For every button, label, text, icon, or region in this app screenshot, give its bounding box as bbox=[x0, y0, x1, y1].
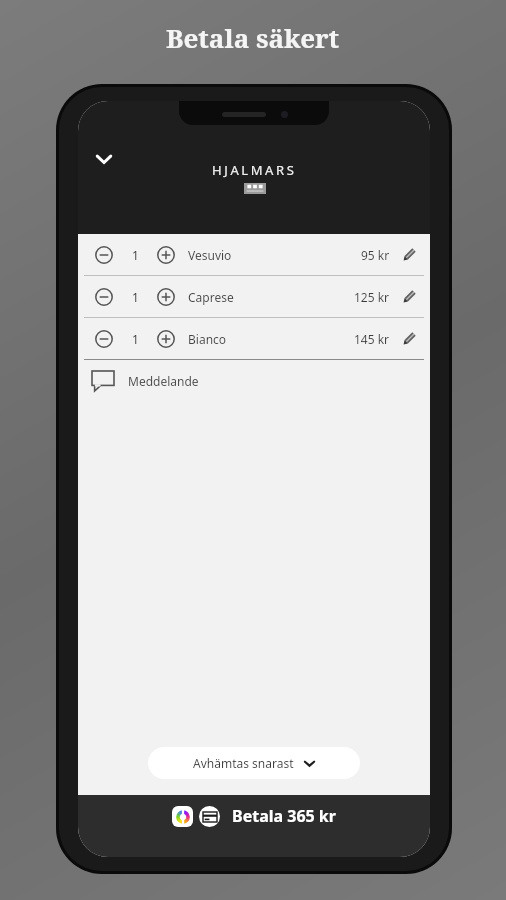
button[interactable]: Increase Bianco bbox=[152, 325, 180, 353]
staticText: Avhämtas snarast bbox=[193, 755, 294, 771]
button[interactable]: Decrease Bianco bbox=[78, 318, 430, 359]
staticText: 1 bbox=[132, 331, 139, 347]
button[interactable]: Decrease Vesuvio bbox=[78, 234, 430, 275]
button[interactable]: Increase Vesuvio bbox=[152, 241, 180, 269]
staticText: HJALMARS bbox=[212, 161, 297, 179]
button[interactable]: Edit Vesuvio bbox=[398, 244, 420, 266]
staticText: Caprese bbox=[188, 289, 354, 305]
button[interactable]: Avhämtas snarast bbox=[148, 747, 360, 779]
button[interactable]: Decrease Vesuvio bbox=[90, 241, 118, 269]
staticText: 95 kr bbox=[361, 247, 390, 263]
button[interactable]: Edit Caprese bbox=[398, 286, 420, 308]
button[interactable]: Decrease Bianco bbox=[90, 325, 118, 353]
staticText: 145 kr bbox=[354, 331, 390, 347]
staticText: 1 bbox=[132, 289, 139, 305]
button[interactable]: Increase Caprese bbox=[152, 283, 180, 311]
staticText: 125 kr bbox=[354, 289, 390, 305]
staticText: Meddelande bbox=[128, 373, 199, 389]
staticText: 1 bbox=[132, 247, 139, 263]
button[interactable]: Close bbox=[86, 141, 122, 177]
button[interactable]: Meddelande bbox=[78, 360, 430, 402]
staticText: Bianco bbox=[188, 331, 354, 347]
staticText: Betala 365 kr bbox=[232, 805, 336, 827]
staticText: Betala säkert bbox=[166, 20, 340, 55]
button[interactable]: Betala 365 kr bbox=[78, 795, 430, 857]
button[interactable]: Decrease Caprese bbox=[78, 276, 430, 317]
staticText: Vesuvio bbox=[188, 247, 361, 263]
button[interactable]: Edit Bianco bbox=[398, 328, 420, 350]
button[interactable]: Decrease Caprese bbox=[90, 283, 118, 311]
